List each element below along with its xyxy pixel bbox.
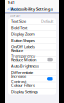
staticText: Increase Contrast (11, 73, 26, 84)
staticText: Colour Filters (11, 82, 35, 88)
staticText: Differentiate (11, 70, 33, 75)
staticText: < (7, 6, 9, 12)
button[interactable]: Display Settings (8, 89, 56, 95)
button[interactable]: On/Off Labels (8, 44, 56, 50)
staticText: Text Size (11, 18, 26, 24)
button[interactable]: Auto-Brightness (8, 63, 56, 69)
button[interactable]: Differentiate (8, 69, 56, 75)
button[interactable]: Button Shapes (8, 37, 56, 43)
staticText: On/Off Labels (11, 44, 35, 49)
staticText: Bold Text (11, 25, 27, 30)
button[interactable]: Reduce Transparency (8, 50, 56, 56)
staticText: Back (9, 6, 18, 12)
staticText: Display Zoom (11, 31, 35, 37)
staticText: Button Shapes (11, 38, 35, 43)
staticText: Default (41, 18, 53, 24)
button[interactable]: Text Size (8, 18, 56, 24)
button[interactable]: < (5, 6, 20, 12)
staticText: Accessibility Settings (11, 6, 53, 12)
staticText: Display Settings (11, 89, 38, 94)
staticText: Reduce Transparency (11, 48, 35, 58)
button[interactable]: Increase Contrast (8, 76, 56, 82)
staticText: DISPLAY (10, 14, 21, 17)
button[interactable]: Reduce Motion (8, 57, 56, 63)
button[interactable]: Colour Filters (8, 82, 56, 88)
staticText: 9:41 (8, 1, 15, 5)
staticText: Reduce Motion (11, 57, 36, 62)
button[interactable]: Bold Text (8, 25, 56, 31)
button[interactable]: Display Zoom (8, 31, 56, 37)
staticText: Auto-Brightness (11, 63, 39, 69)
